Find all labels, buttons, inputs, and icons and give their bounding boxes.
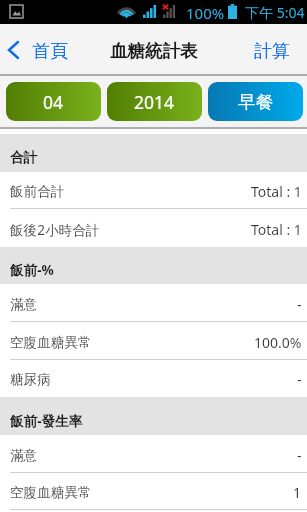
button[interactable]: 首頁 — [0, 38, 78, 61]
staticText: 計算 — [254, 40, 290, 63]
button[interactable]: 空腹血糖異常 — [0, 322, 307, 360]
staticText: 首頁 — [32, 40, 68, 63]
button[interactable]: 計算 — [244, 38, 307, 61]
button[interactable]: 早餐 — [208, 82, 303, 121]
staticText: 飯前合計 — [10, 183, 65, 200]
staticText: 滿意 — [10, 296, 38, 313]
staticText: - — [297, 370, 302, 389]
staticText: 100.0% — [254, 333, 302, 352]
staticText: 04 — [43, 90, 64, 114]
staticText: 飯前-% — [10, 260, 54, 279]
staticText: Total : 1 — [251, 220, 302, 239]
staticText: 血糖統計表 — [110, 40, 198, 62]
staticText: 1 — [293, 483, 302, 502]
button[interactable]: 飯後2小時合計 — [0, 209, 307, 247]
button[interactable]: 04 — [6, 82, 101, 121]
staticText: 早餐 — [238, 91, 273, 113]
button[interactable]: 糖尿病 — [0, 360, 307, 397]
staticText: 飯前-發生率 — [10, 411, 83, 430]
staticText: - — [297, 295, 302, 314]
staticText: 糖尿病 — [10, 371, 51, 388]
staticText: - — [297, 446, 302, 465]
staticText: 合計 — [10, 149, 38, 166]
button[interactable]: 滿意 — [0, 435, 307, 473]
staticText: 飯後2小時合計 — [10, 220, 100, 239]
staticText: 空腹血糖異常 — [10, 484, 92, 501]
staticText: Total : 1 — [251, 182, 302, 201]
button[interactable]: 2014 — [107, 82, 202, 121]
button[interactable]: 飯前合計 — [0, 172, 307, 209]
staticText: 100% — [186, 3, 225, 23]
staticText: 2014 — [134, 90, 175, 114]
staticText: 滿意 — [10, 447, 38, 464]
staticText: 空腹血糖異常 — [10, 334, 92, 351]
staticText: 下午 5:04 — [245, 3, 305, 22]
button[interactable]: 空腹血糖異常 — [0, 473, 307, 510]
button[interactable]: 滿意 — [0, 284, 307, 322]
